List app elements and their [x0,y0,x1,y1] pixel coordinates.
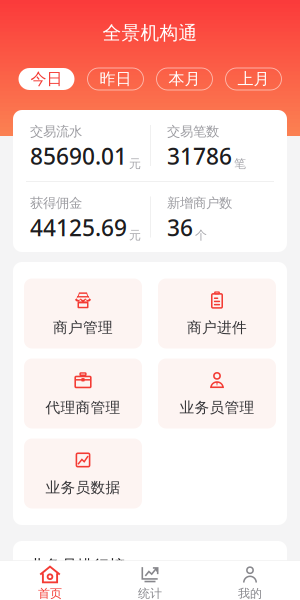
staticText: 31786 [167,141,232,171]
button[interactable]: 今日 [18,68,74,90]
staticText: 笔 [234,156,246,171]
staticText: 获得佣金 [30,195,82,211]
staticText: 新增商户数 [167,195,232,211]
button[interactable]: 我的 [200,561,300,600]
staticText: 本月 [168,69,200,89]
staticText: 业务员排行榜 [29,556,125,576]
button[interactable]: 业务员数据 [24,438,142,508]
staticText: 个 [195,228,207,242]
button[interactable]: 统计 [100,561,200,600]
staticText: 交易流水 [30,123,82,140]
staticText: 交易笔数 [167,123,219,140]
staticText: 首页 [38,586,62,600]
staticText: 上月 [237,69,269,89]
button[interactable]: 代理商管理 [24,358,142,428]
staticText: 统计 [138,586,162,600]
staticText: 我的 [238,586,262,600]
staticText: 昨日 [99,69,131,89]
staticText: 代理商管理 [45,398,120,416]
button[interactable]: 首页 [0,561,100,600]
staticText: 元 [129,228,141,242]
staticText: 85690.01 [30,141,127,171]
staticText: 44125.69 [30,212,127,242]
button[interactable]: 商户管理 [24,278,142,348]
button[interactable]: 业务员管理 [158,358,276,428]
staticText: 商户进件 [187,318,247,336]
staticText: 商户管理 [53,318,113,336]
staticText: 元 [129,156,141,171]
staticText: 全景机构通 [102,21,197,44]
staticText: 业务员管理 [179,398,254,416]
button[interactable]: 本月 [156,68,212,90]
button[interactable]: 上月 [225,68,281,90]
staticText: 今日 [30,69,62,89]
staticText: 业务员数据 [45,478,120,496]
staticText: 36 [167,212,193,242]
button[interactable]: 商户进件 [158,278,276,348]
button[interactable]: 昨日 [87,68,143,90]
